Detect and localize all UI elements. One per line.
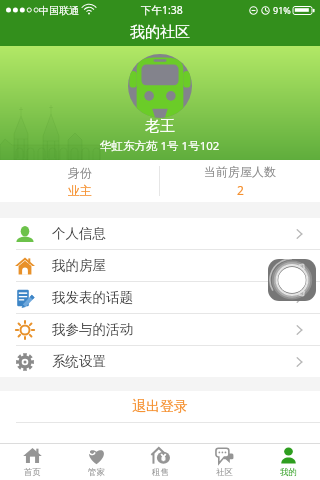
button[interactable]: 我发表的话题 [0,282,320,313]
button[interactable]: 首页 [0,443,64,480]
staticText: 我的房屋 [52,257,106,274]
staticText: 退出登录 [132,398,188,416]
staticText: 下午1:38 [141,3,183,17]
button[interactable]: 管家 [64,443,128,480]
staticText: 当前房屋人数 [204,164,276,179]
staticText: 我参与的活动 [52,321,133,338]
button[interactable]: 我的 [256,443,320,480]
staticText: 身份 [68,165,92,180]
button[interactable]: 社区 [192,443,256,480]
button[interactable]: 当前房屋人数 [160,160,320,202]
staticText: 2 [237,182,244,198]
button[interactable]: 身份 [0,160,159,202]
staticText: 91% [273,4,291,16]
button[interactable]: 租售 [128,443,192,480]
staticText: 我的社区 [130,23,190,42]
staticText: 中国联通 [39,4,79,17]
staticText: 管家 [88,467,105,478]
staticText: 租售 [152,467,169,478]
staticText: 个人信息 [52,225,106,242]
staticText: 华虹东方苑 1号 1号102 [100,138,220,154]
staticText: 社区 [216,467,233,478]
staticText: 系统设置 [52,353,106,370]
button[interactable]: 我的房屋 [0,250,320,281]
button[interactable]: 系统设置 [0,346,320,377]
button[interactable]: 个人信息 [0,218,320,249]
button[interactable]: 我参与的活动 [0,314,320,345]
staticText: 业主 [68,183,92,198]
button[interactable]: 退出登录 [0,391,320,422]
staticText: 我的 [280,467,297,478]
staticText: 首页 [24,467,41,478]
staticText: 我发表的话题 [52,289,133,306]
staticText: 老王 [145,117,175,136]
